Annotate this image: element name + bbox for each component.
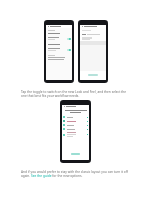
button[interactable] — [63, 128, 88, 130]
button[interactable] — [71, 153, 80, 155]
button[interactable] — [63, 124, 88, 126]
button[interactable] — [48, 37, 71, 40]
button[interactable] — [63, 120, 88, 122]
button[interactable] — [88, 74, 98, 76]
button[interactable] — [63, 116, 88, 118]
button[interactable] — [63, 132, 88, 137]
staticText: And if you would prefer to stay with the… — [21, 170, 132, 178]
staticText: Tap the toggle to switch on the new Look… — [21, 90, 132, 98]
button[interactable] — [48, 48, 71, 51]
